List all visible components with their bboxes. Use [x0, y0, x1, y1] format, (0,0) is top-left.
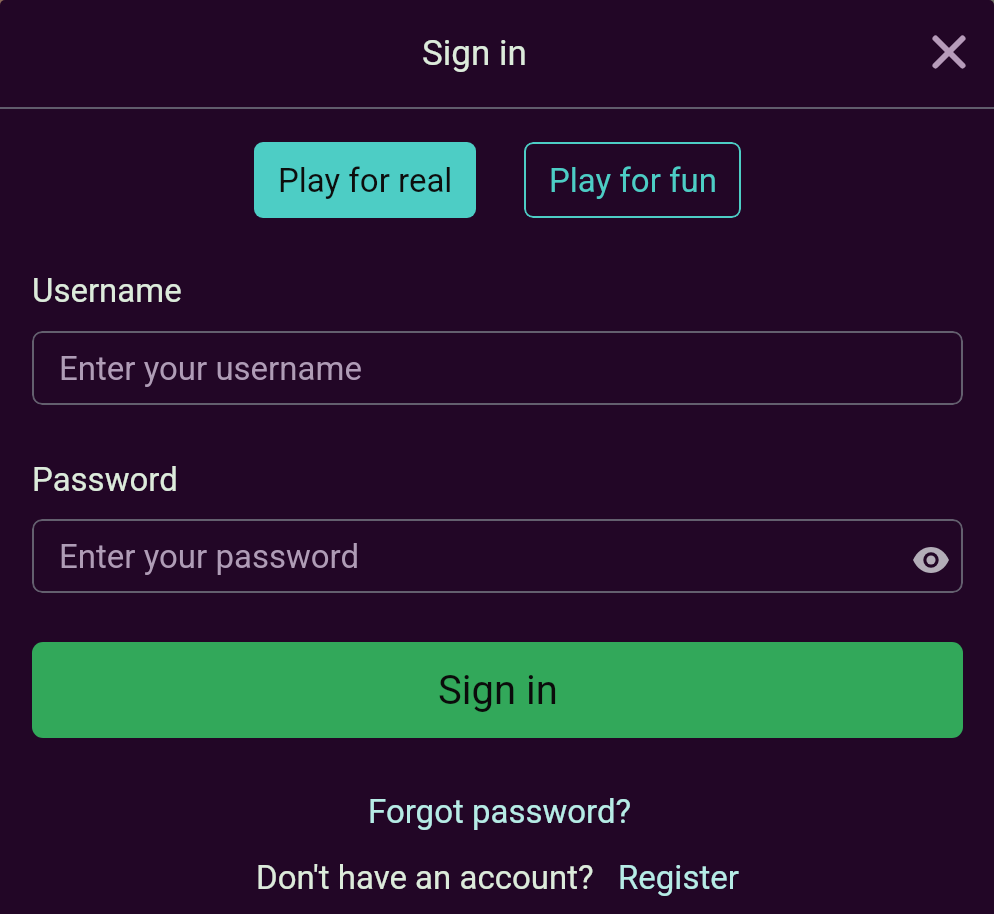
- button[interactable]: Close: [921, 24, 977, 80]
- staticText: Password: [32, 460, 178, 499]
- staticText: Sign in: [438, 667, 558, 714]
- staticText: Register: [618, 858, 739, 897]
- staticText: Sign in: [422, 33, 527, 74]
- staticText: Play for real: [278, 161, 453, 200]
- button[interactable]: Play for real: [254, 142, 476, 218]
- button[interactable]: Sign in: [32, 642, 963, 738]
- button[interactable]: Enter your username: [32, 331, 963, 405]
- button[interactable]: Show password: [907, 532, 955, 580]
- staticText: Enter your username: [59, 349, 362, 388]
- button[interactable]: Enter your password: [32, 519, 963, 593]
- button[interactable]: Register: [618, 858, 739, 897]
- staticText: Username: [32, 271, 182, 310]
- staticText: Enter your password: [59, 537, 360, 576]
- button[interactable]: Play for fun: [524, 142, 741, 218]
- button[interactable]: Forgot password?: [368, 792, 632, 831]
- staticText: Forgot password?: [368, 792, 632, 831]
- staticText: Don't have an account?: [256, 858, 594, 897]
- staticText: Play for fun: [549, 161, 717, 200]
